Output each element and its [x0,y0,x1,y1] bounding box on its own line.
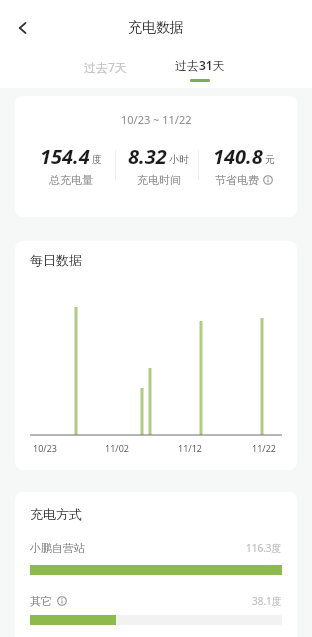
staticText: 节省电费 [215,173,259,187]
staticText: 10/23 [33,442,57,454]
staticText: 小鹏自营站 [30,541,85,555]
staticText: 元 [265,153,275,166]
staticText: 每日数据 [30,252,82,268]
staticText: 过去7天 [84,59,127,75]
staticText: 充电数据 [128,19,184,37]
staticText: 度 [92,153,102,166]
staticText: 116.3度 [246,541,282,555]
staticText: 140.8 [213,143,263,170]
staticText: 10/23 ~ 11/22 [121,112,192,127]
staticText: 38.1度 [252,594,282,608]
staticText: 8.32 [128,143,167,170]
staticText: 154.4 [40,143,90,170]
staticText: 11/12 [178,442,202,454]
staticText: 总充电量 [49,173,93,187]
staticText: 其它 [30,594,52,608]
staticText: 小时 [169,153,189,166]
staticText: 充电时间 [137,173,181,187]
staticText: 11/02 [105,442,129,454]
staticText: 11/22 [252,442,276,454]
staticText: 过去31天 [175,57,225,73]
staticText: 充电方式 [30,506,82,522]
